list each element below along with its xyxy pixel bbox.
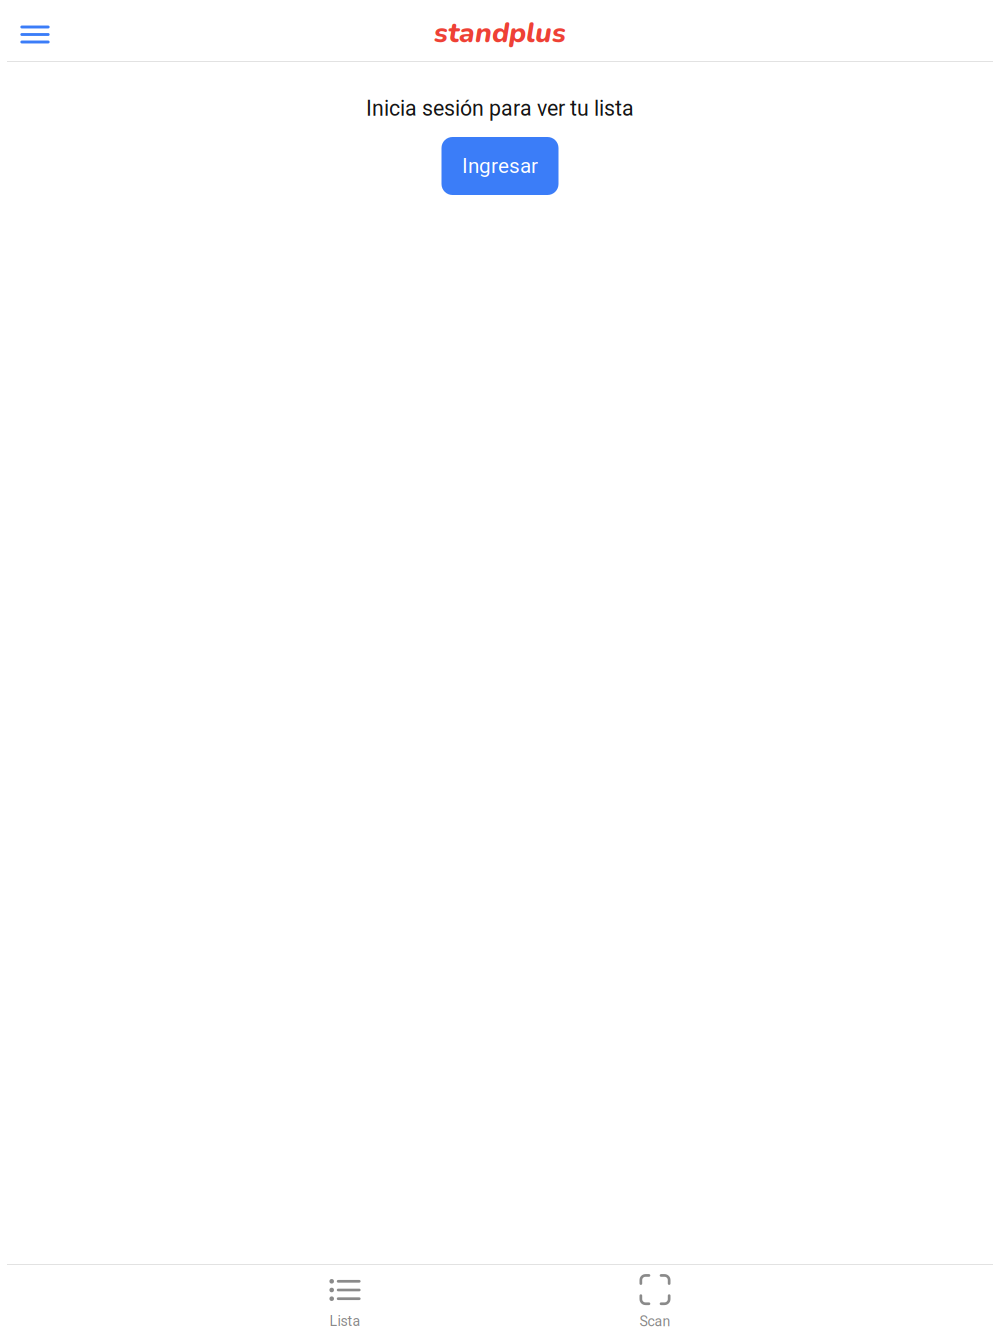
staticText: standplus [434, 14, 566, 52]
button[interactable]: Menu [10, 9, 60, 57]
button[interactable]: Ingresar [441, 137, 558, 195]
staticText: Scan [639, 1313, 670, 1330]
button[interactable]: Lista [190, 1265, 500, 1334]
staticText: Inicia sesión para ver tu lista [366, 96, 634, 121]
button[interactable]: Scan [500, 1265, 810, 1334]
staticText: Ingresar [462, 154, 538, 178]
staticText: Lista [329, 1313, 360, 1330]
